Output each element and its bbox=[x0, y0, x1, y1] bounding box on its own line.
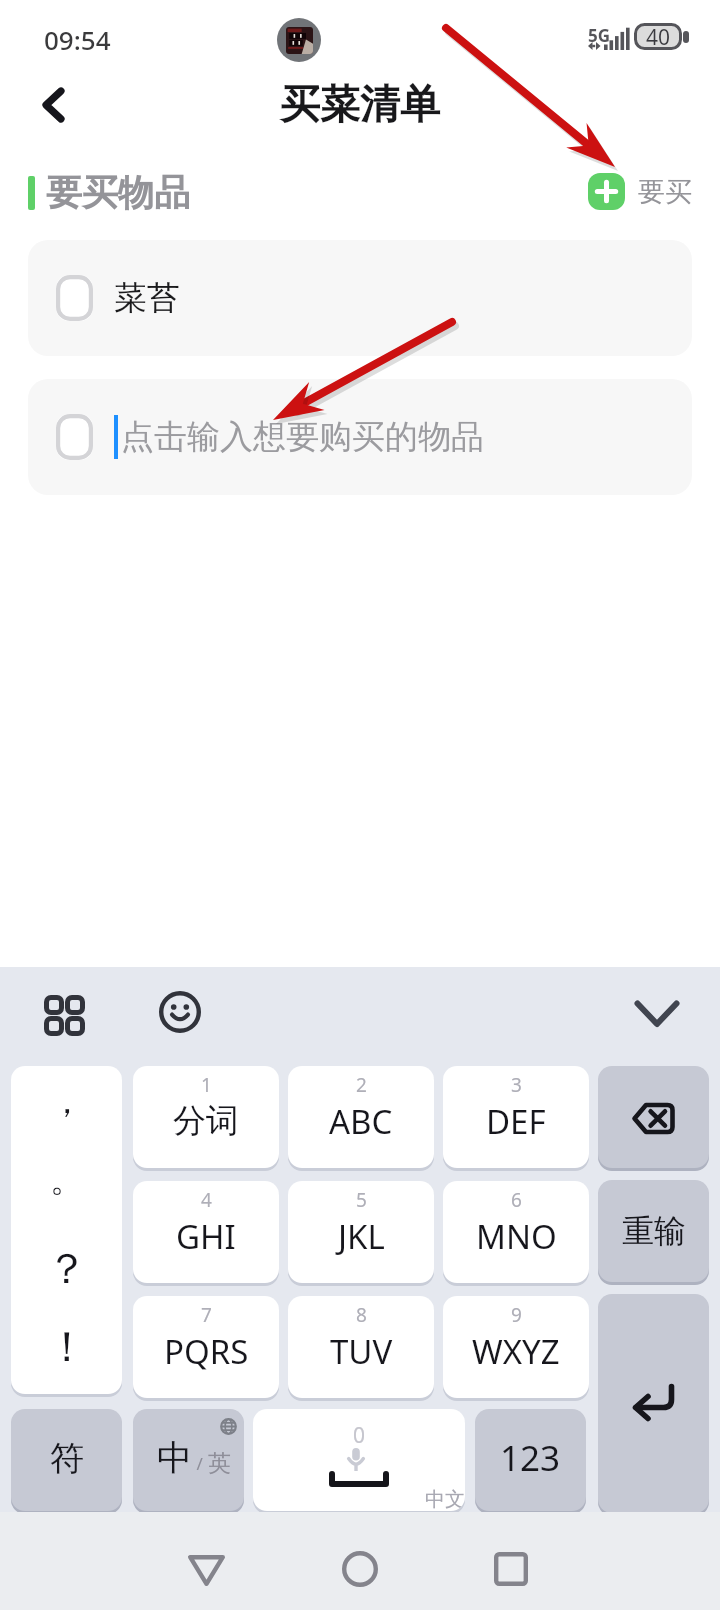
button[interactable]: 点击输入想要购买的物品 bbox=[28, 379, 692, 495]
staticText: 4 bbox=[201, 1187, 212, 1213]
staticText: 3 bbox=[511, 1072, 522, 1098]
staticText: 英 bbox=[208, 1449, 231, 1478]
button[interactable]: 重输 bbox=[598, 1180, 709, 1282]
staticText: 123 bbox=[500, 1434, 561, 1482]
staticText: DEF bbox=[486, 1099, 546, 1144]
staticText: 0 bbox=[353, 1421, 366, 1450]
staticText: JKL bbox=[338, 1214, 385, 1259]
button[interactable]: 3 bbox=[443, 1066, 589, 1168]
staticText: 6 bbox=[511, 1187, 522, 1213]
staticText: 中 bbox=[157, 1436, 192, 1480]
staticText: 5G bbox=[588, 24, 611, 47]
button[interactable]: 9 bbox=[443, 1296, 589, 1398]
staticText: ！ bbox=[46, 1321, 88, 1369]
button[interactable]: 符 bbox=[11, 1409, 122, 1511]
staticText: MNO bbox=[476, 1214, 557, 1259]
staticText: PQRS bbox=[164, 1329, 249, 1374]
staticText: 菜苔 bbox=[114, 277, 180, 319]
button[interactable]: Back bbox=[18, 87, 84, 153]
button[interactable]: Emoji bbox=[147, 979, 213, 1045]
staticText: 2 bbox=[356, 1072, 367, 1098]
button[interactable]: Hide keyboard bbox=[624, 981, 690, 1047]
button[interactable]: Space bbox=[253, 1409, 465, 1511]
staticText: ， bbox=[50, 1080, 84, 1123]
staticText: 40 bbox=[646, 23, 671, 50]
staticText: 点击输入想要购买的物品 bbox=[121, 416, 484, 458]
staticText: ABC bbox=[329, 1099, 393, 1144]
button[interactable]: 6 bbox=[443, 1181, 589, 1283]
button[interactable]: Back bbox=[176, 1543, 236, 1591]
button[interactable]: Enter bbox=[598, 1294, 709, 1513]
button[interactable]: Backspace bbox=[598, 1066, 709, 1168]
staticText: WXYZ bbox=[472, 1329, 560, 1374]
button[interactable]: 4 bbox=[133, 1181, 279, 1283]
button[interactable]: 8 bbox=[288, 1296, 434, 1398]
staticText: 要买物品 bbox=[46, 170, 190, 215]
staticText: GHI bbox=[176, 1214, 236, 1259]
button[interactable]: 菜苔 bbox=[28, 240, 692, 356]
staticText: TUV bbox=[330, 1329, 393, 1374]
staticText: 符 bbox=[50, 1437, 84, 1480]
button[interactable]: 要买 bbox=[588, 173, 692, 210]
staticText: / bbox=[192, 1452, 208, 1475]
staticText: 重输 bbox=[622, 1211, 686, 1251]
staticText: ？ bbox=[46, 1243, 88, 1291]
button[interactable]: 123 bbox=[475, 1409, 586, 1511]
staticText: 9 bbox=[511, 1302, 522, 1328]
staticText: 1 bbox=[201, 1072, 212, 1098]
button[interactable]: Home bbox=[330, 1543, 390, 1591]
staticText: 买菜清单 bbox=[280, 79, 440, 129]
button[interactable]: Keyboard layouts bbox=[30, 981, 96, 1047]
staticText: 8 bbox=[356, 1302, 367, 1328]
button[interactable]: 1 bbox=[133, 1066, 279, 1168]
staticText: 要买 bbox=[638, 175, 692, 209]
button[interactable]: Chinese English toggle bbox=[133, 1409, 244, 1511]
button[interactable]: 7 bbox=[133, 1296, 279, 1398]
button[interactable]: Punctuation bbox=[11, 1066, 122, 1394]
button[interactable]: 5 bbox=[288, 1181, 434, 1283]
staticText: 7 bbox=[201, 1302, 212, 1328]
staticText: 中文 bbox=[425, 1487, 465, 1511]
staticText: 。 bbox=[50, 1158, 84, 1201]
button[interactable]: Recent apps bbox=[482, 1543, 542, 1591]
button[interactable]: 2 bbox=[288, 1066, 434, 1168]
staticText: 09:54 bbox=[44, 22, 111, 57]
staticText: 分词 bbox=[173, 1100, 239, 1142]
staticText: 5 bbox=[356, 1187, 367, 1213]
